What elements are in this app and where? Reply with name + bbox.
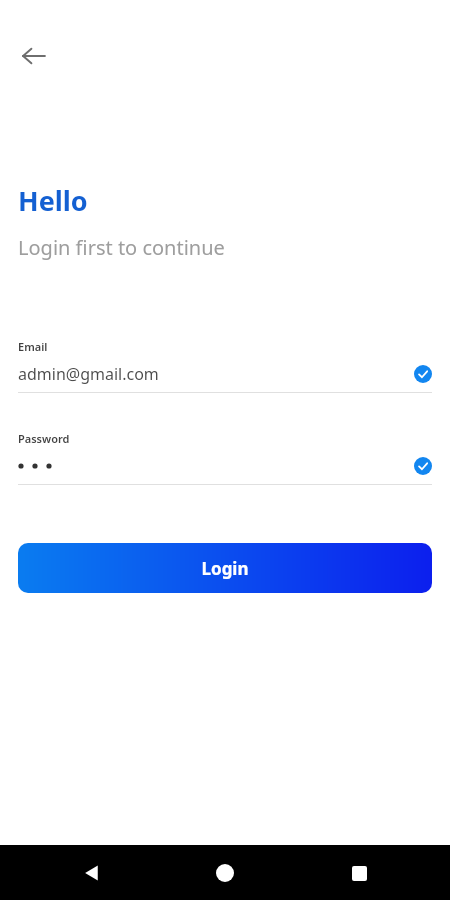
button[interactable]: Home bbox=[203, 851, 247, 895]
staticText: admin@gmail.com bbox=[18, 363, 414, 385]
button[interactable]: Back bbox=[70, 851, 114, 895]
button[interactable]: Back bbox=[10, 32, 58, 80]
staticText: Login first to continue bbox=[18, 234, 225, 261]
staticText: Email bbox=[18, 339, 48, 354]
staticText: Password bbox=[18, 431, 70, 446]
button[interactable]: Recents bbox=[337, 851, 381, 895]
button[interactable]: Login bbox=[18, 543, 432, 593]
staticText: Hello bbox=[18, 182, 88, 219]
staticText: Login bbox=[201, 557, 249, 580]
